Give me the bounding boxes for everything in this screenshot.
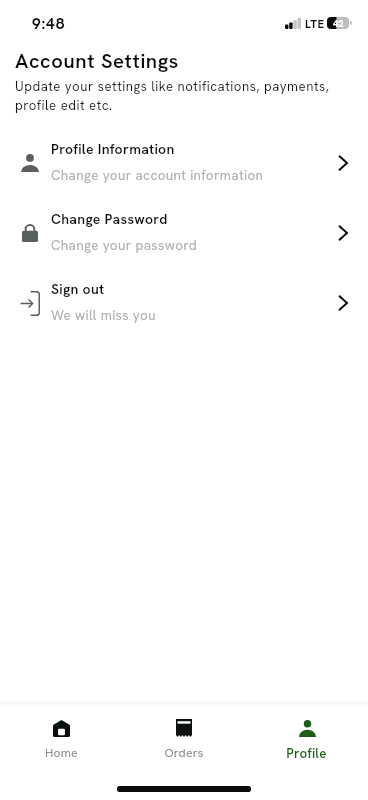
staticText: Profile Information <box>51 140 175 158</box>
staticText: Update your settings like notifications,… <box>15 78 355 114</box>
button[interactable]: Orders <box>122 706 245 764</box>
button[interactable]: Profile Information <box>0 128 368 198</box>
staticText: Change Password <box>51 210 168 228</box>
button[interactable]: Change Password <box>0 198 368 268</box>
staticText: We will miss you <box>51 306 156 324</box>
staticText: Account Settings <box>15 48 179 74</box>
staticText: 42 <box>333 17 344 29</box>
staticText: Orders <box>164 745 204 761</box>
staticText: Profile <box>286 745 327 762</box>
button[interactable]: Sign out <box>0 268 368 338</box>
staticText: Home <box>45 745 78 761</box>
staticText: 9:48 <box>32 13 66 33</box>
button[interactable]: Home <box>0 706 122 764</box>
staticText: Sign out <box>51 280 105 298</box>
staticText: Change your password <box>51 236 198 254</box>
button[interactable]: Profile <box>245 706 368 764</box>
staticText: LTE <box>305 16 325 31</box>
staticText: Change your account information <box>51 166 264 184</box>
